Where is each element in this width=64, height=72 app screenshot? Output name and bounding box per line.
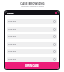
button[interactable]: OPEN CASE — [5, 62, 59, 69]
staticText: Case file — [8, 43, 16, 46]
button[interactable]: Case file — [8, 57, 56, 62]
button[interactable]: Case file — [8, 49, 56, 54]
staticText: Case file — [8, 58, 16, 61]
staticText: OPEN CASE — [25, 64, 39, 67]
button[interactable]: Case file — [8, 42, 56, 47]
button[interactable]: Case file — [8, 19, 56, 24]
staticText: Case file — [8, 50, 16, 53]
button[interactable]: Case file — [8, 34, 56, 39]
staticText: Cases — [7, 12, 14, 15]
button[interactable]: Case file — [8, 27, 56, 32]
staticText: Case file — [8, 28, 16, 31]
staticText: CASE BROWSING — [20, 2, 45, 6]
staticText: choose a record to open — [21, 5, 44, 8]
staticText: Case file — [8, 35, 16, 38]
button[interactable]: Cases — [7, 11, 57, 15]
staticText: Case file — [8, 20, 16, 23]
